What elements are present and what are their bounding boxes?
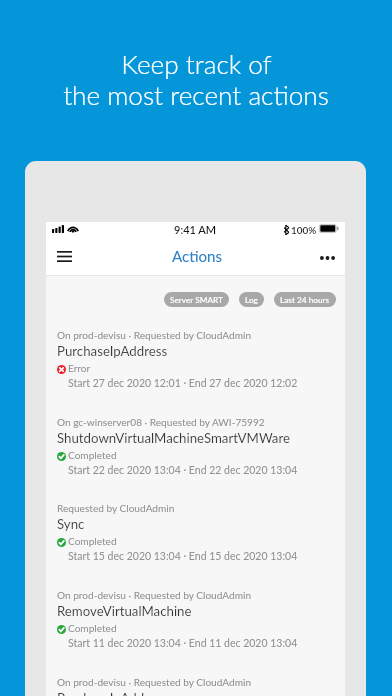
button[interactable]: Last 24 hours (274, 292, 336, 307)
staticText: On gc-winserver08 · Requested by AWI-759… (57, 416, 265, 428)
staticText: Keep track of (121, 48, 272, 79)
button[interactable]: On prod-devisu · Requested by CloudAdmin (46, 576, 345, 626)
staticText: Error (68, 362, 91, 374)
staticText: RemoveVirtualMachine (57, 603, 192, 619)
staticText: PurchaseIpAddress (57, 690, 168, 696)
staticText: On prod-devisu · Requested by CloudAdmin (57, 329, 252, 341)
button[interactable]: On prod-devisu · Requested by CloudAdmin (46, 316, 345, 366)
button[interactable]: More options (311, 241, 343, 275)
staticText: Start 22 dec 2020 13:04 · End 22 dec 202… (68, 464, 298, 477)
button[interactable]: Menu (49, 239, 80, 273)
staticText: the most recent actions (63, 79, 329, 110)
button[interactable]: On gc-winserver08 · Requested by AWI-759… (46, 403, 345, 453)
staticText: 100% (291, 224, 317, 236)
staticText: Start 15 dec 2020 13:04 · End 15 dec 202… (68, 550, 298, 563)
staticText: Log (245, 295, 258, 305)
button[interactable]: Requested by CloudAdmin (46, 489, 345, 539)
staticText: Server SMART (170, 295, 223, 305)
staticText: PurchaseIpAddress (57, 343, 168, 359)
button[interactable]: Log (239, 292, 264, 307)
staticText: 9:41 AM (174, 223, 217, 236)
staticText: Start 27 dec 2020 12:01 · End 27 dec 202… (68, 377, 298, 390)
staticText: Completed (68, 449, 117, 461)
staticText: Requested by CloudAdmin (57, 502, 175, 514)
staticText: Last 24 hours (280, 295, 330, 305)
staticText: Completed (68, 622, 117, 634)
staticText: Sync (57, 516, 85, 532)
button[interactable]: On prod-devisu · Requested by CloudAdmin (46, 663, 345, 696)
staticText: Actions (172, 247, 223, 265)
staticText: ShutdownVirtualMachineSmartVMWare (57, 430, 290, 446)
staticText: On prod-devisu · Requested by CloudAdmin (57, 676, 252, 688)
staticText: On prod-devisu · Requested by CloudAdmin (57, 589, 252, 601)
button[interactable]: Server SMART (164, 292, 229, 307)
staticText: Start 11 dec 2020 13:04 · End 11 dec 202… (68, 637, 298, 650)
staticText: Completed (68, 535, 117, 547)
